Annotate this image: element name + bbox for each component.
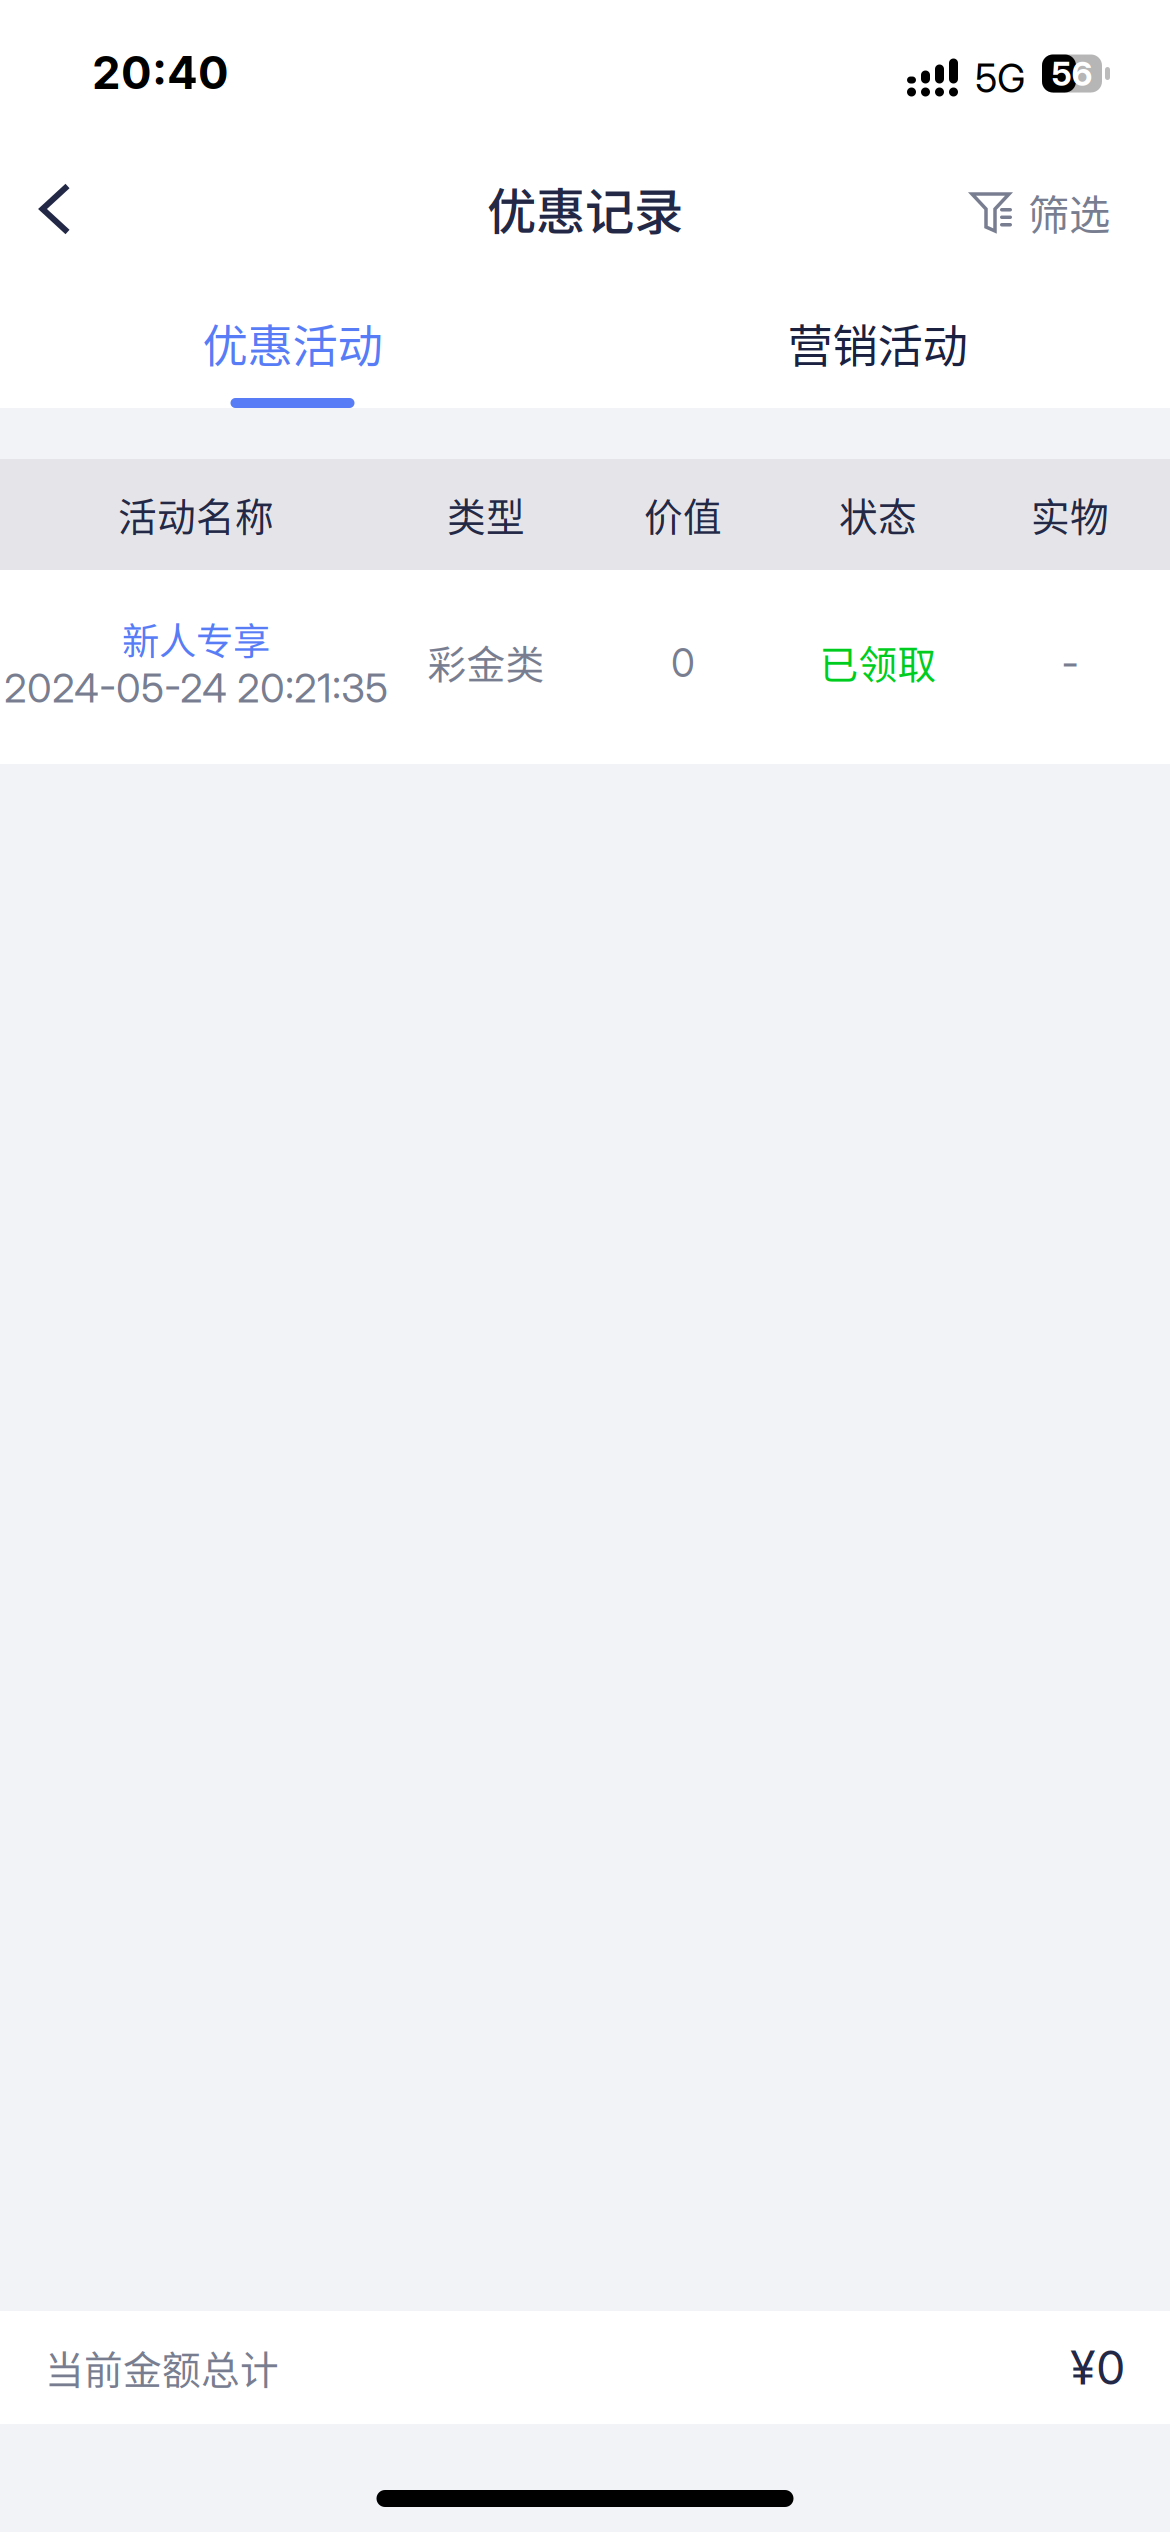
staticText: 价值 — [644, 486, 722, 542]
staticText: 筛选 — [1028, 182, 1110, 242]
staticText: 彩金类 — [427, 634, 544, 690]
staticText: 20:40 — [92, 45, 229, 100]
staticText: 新人专享 — [122, 612, 270, 666]
button[interactable]: 筛选 — [970, 145, 1170, 265]
staticText: 已领取 — [819, 634, 936, 690]
staticText: ¥0 — [1070, 2339, 1125, 2396]
staticText: 5G — [975, 55, 1025, 102]
staticText: 0 — [671, 640, 695, 686]
button[interactable]: 返回 — [0, 145, 110, 265]
staticText: 优惠活动 — [202, 310, 382, 376]
staticText: 活动名称 — [118, 486, 274, 542]
staticText: 优惠记录 — [487, 172, 683, 244]
button[interactable]: 营销活动 — [585, 269, 1170, 408]
staticText: - — [1061, 638, 1078, 686]
button[interactable]: 优惠活动 — [0, 269, 585, 408]
staticText: 当前金额总计 — [45, 2339, 279, 2395]
button[interactable]: 新人专享 — [0, 570, 1170, 764]
staticText: 实物 — [1031, 486, 1109, 542]
staticText: 2024-05-24 20:21:35 — [4, 664, 388, 712]
staticText: 56 — [1051, 53, 1092, 94]
staticText: 类型 — [447, 486, 525, 542]
staticText: 状态 — [839, 486, 917, 542]
staticText: 营销活动 — [787, 310, 967, 376]
